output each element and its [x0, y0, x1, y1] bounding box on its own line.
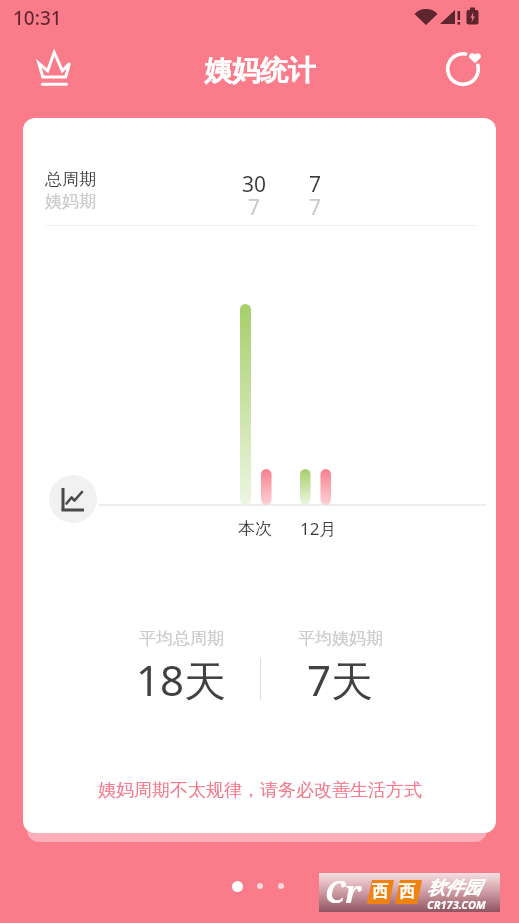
- staticText: 总周期: [45, 169, 96, 190]
- staticText: 7: [309, 170, 322, 192]
- staticText: 平均总周期: [139, 628, 224, 649]
- staticText: 姨妈期: [45, 191, 96, 212]
- button[interactable]: [438, 45, 486, 93]
- staticText: Cr: [325, 871, 362, 910]
- staticText: 西: [372, 882, 388, 902]
- staticText: 7天: [307, 651, 374, 707]
- staticText: CR173.COM: [427, 897, 486, 912]
- staticText: 姨妈周期不太规律，请务必改善生活方式: [98, 779, 422, 802]
- staticText: 软件园: [427, 877, 481, 900]
- staticText: 30: [242, 170, 267, 192]
- staticText: 18天: [136, 651, 227, 707]
- staticText: 10:31: [13, 5, 62, 31]
- staticText: 姨妈统计: [204, 53, 316, 87]
- staticText: 平均姨妈期: [298, 628, 383, 649]
- staticText: 本次: [238, 518, 272, 539]
- staticText: 7: [248, 193, 261, 215]
- button[interactable]: [30, 44, 78, 92]
- staticText: 12月: [300, 517, 337, 539]
- button[interactable]: [49, 475, 97, 523]
- staticText: 7: [309, 193, 322, 215]
- staticText: 西: [399, 882, 415, 902]
